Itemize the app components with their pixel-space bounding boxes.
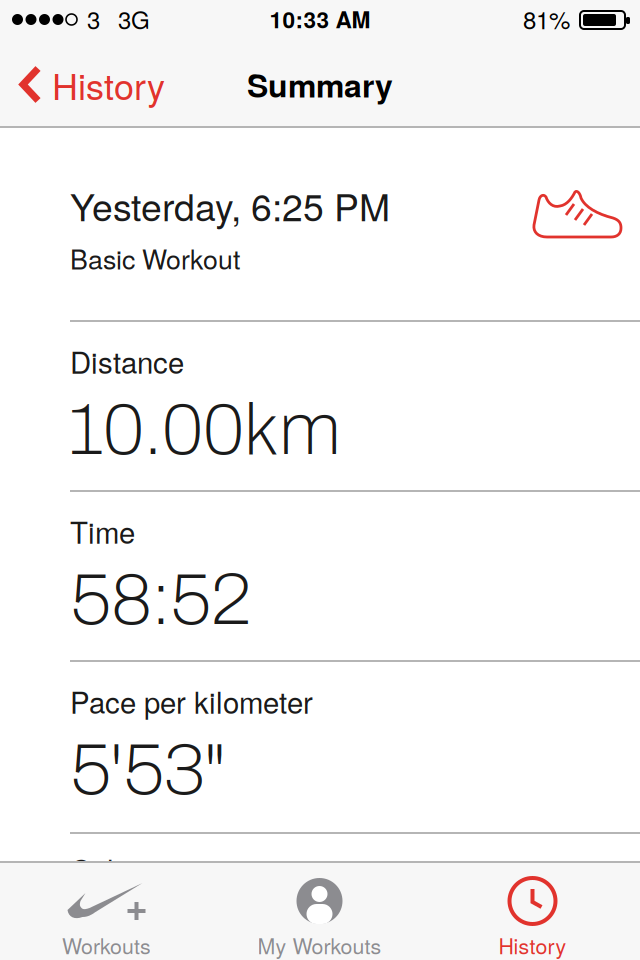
staticText: Distance (70, 340, 184, 382)
staticText: Pace per kilometer (70, 680, 313, 722)
staticText: 5'53" (70, 731, 226, 809)
staticText: Summary (247, 62, 393, 107)
staticText: 10.00km (70, 391, 341, 469)
staticText: 3 (87, 2, 100, 36)
staticText: 58:52 (70, 561, 251, 639)
staticText: 3G (118, 2, 150, 36)
button[interactable]: My Workouts (213, 863, 426, 960)
staticText: Time (70, 510, 135, 552)
staticText: Basic Workout (70, 239, 240, 277)
button[interactable]: Workouts (0, 863, 213, 960)
staticText: Workouts (62, 930, 151, 960)
staticText: 81% (523, 2, 570, 36)
staticText: 10:33 AM (269, 3, 370, 35)
button[interactable]: History (426, 863, 639, 960)
button[interactable]: History (0, 41, 181, 128)
staticText: History (498, 930, 566, 960)
staticText: History (52, 59, 165, 110)
staticText: My Workouts (257, 930, 381, 960)
staticText: Calories (70, 848, 178, 890)
staticText: Yesterday, 6:25 PM (70, 178, 390, 232)
